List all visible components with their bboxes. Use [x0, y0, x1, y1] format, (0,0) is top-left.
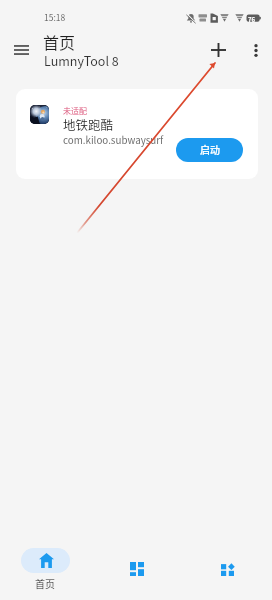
staticText: 15:18 — [44, 11, 66, 23]
staticText: LumnyTool 8 — [44, 51, 119, 69]
staticText: 76 — [248, 15, 256, 24]
button[interactable]: Menu — [7, 35, 36, 64]
button[interactable]: 未适配 — [16, 89, 258, 179]
button[interactable]: 首页 — [10, 543, 80, 593]
staticText: com.kiloo.subwaysurf — [63, 133, 164, 147]
button[interactable]: Apps — [101, 548, 171, 589]
staticText: 首页 — [35, 576, 55, 590]
staticText: 首页 — [43, 30, 76, 53]
button[interactable]: More options — [242, 36, 270, 64]
button[interactable]: More — [191, 548, 261, 589]
staticText: 未适配 — [63, 105, 87, 117]
staticText: 地铁跑酷 — [63, 115, 114, 133]
button[interactable]: 启动 — [176, 138, 243, 162]
staticText: 启动 — [200, 142, 220, 156]
button[interactable]: Add — [204, 36, 232, 64]
